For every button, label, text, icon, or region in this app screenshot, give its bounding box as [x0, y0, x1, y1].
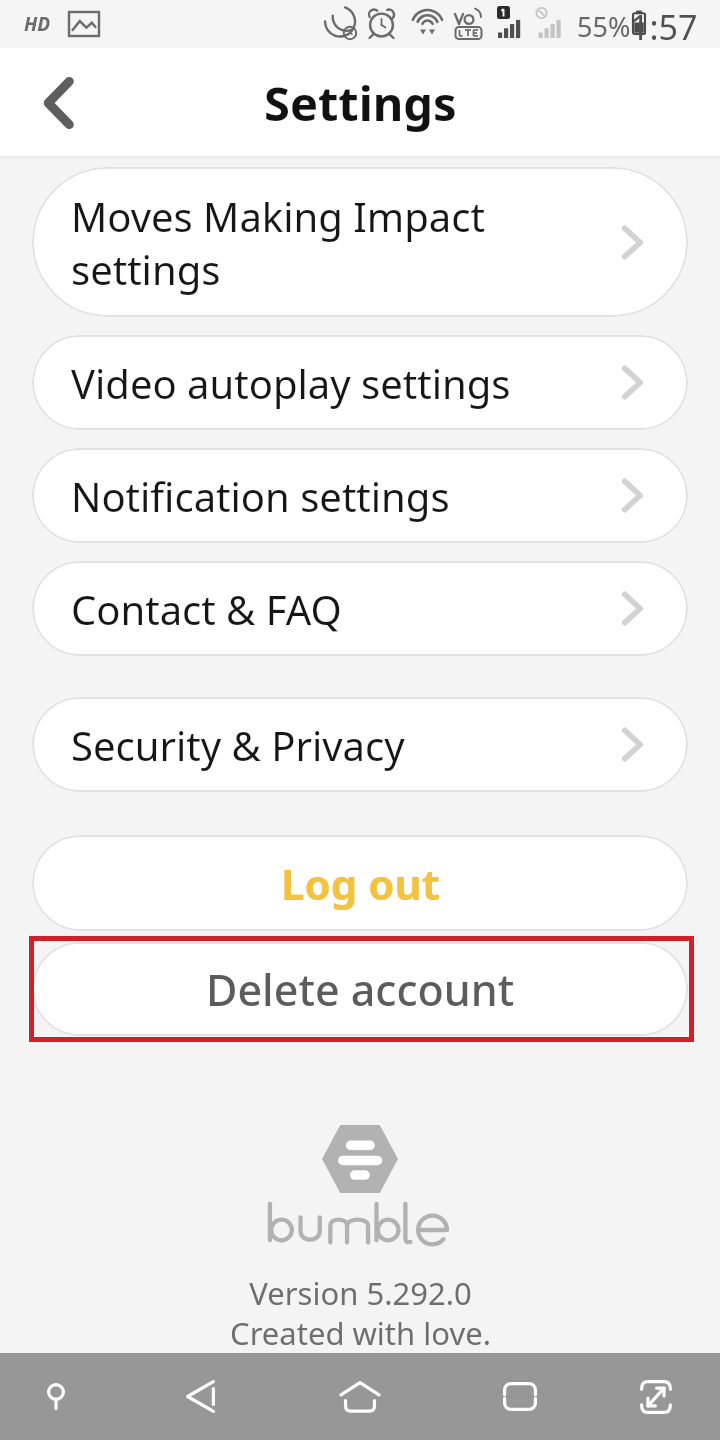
staticText: Security & Privacy [71, 718, 571, 772]
button[interactable]: Delete account [32, 942, 688, 1036]
button[interactable]: Back [164, 1353, 236, 1440]
staticText: Log out [281, 855, 440, 912]
button[interactable]: Back [22, 67, 94, 139]
button[interactable]: Search [20, 1353, 92, 1440]
staticText: Delete account [206, 960, 515, 1019]
staticText: Version 5.292.0 Created with love. [230, 1272, 491, 1354]
button[interactable]: Recents [484, 1353, 556, 1440]
staticText: Contact & FAQ [71, 582, 571, 636]
button[interactable]: Security & Privacy [32, 697, 688, 792]
button[interactable]: Moves Making Impact settings [32, 167, 688, 317]
button[interactable]: Notification settings [32, 448, 688, 543]
staticText: 55% [577, 8, 631, 45]
staticText: Settings [264, 71, 457, 135]
staticText: 1:57 [630, 4, 698, 50]
staticText: Video autoplay settings [71, 356, 571, 410]
button[interactable]: Log out [32, 835, 688, 931]
staticText: Moves Making Impact settings [71, 189, 501, 296]
button[interactable]: Home [324, 1353, 396, 1440]
staticText: Notification settings [71, 469, 571, 523]
staticText: HD [24, 11, 51, 37]
button[interactable]: Video autoplay settings [32, 335, 688, 430]
button[interactable]: Contact & FAQ [32, 561, 688, 656]
button[interactable]: Fullscreen [620, 1353, 692, 1440]
